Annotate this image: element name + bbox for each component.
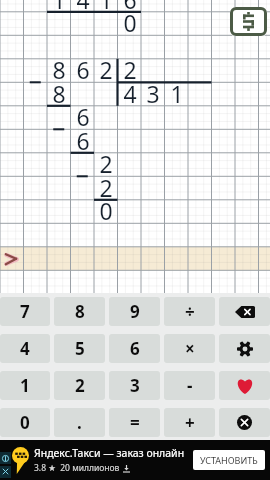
staticText: 1 <box>170 78 184 109</box>
staticText: 2 <box>75 374 85 397</box>
staticText: . <box>77 411 82 434</box>
button[interactable]: 3 <box>109 371 160 400</box>
staticText: - <box>187 374 193 397</box>
staticText: 6 <box>130 337 140 360</box>
staticText: 2 <box>99 172 113 203</box>
button[interactable]: 8 <box>54 297 105 326</box>
staticText: 6 <box>76 125 90 156</box>
button[interactable]: Favorites <box>219 371 270 400</box>
button[interactable]: Clear <box>219 408 270 437</box>
staticText: 1 <box>20 374 30 397</box>
button[interactable]: 4 <box>0 334 50 363</box>
staticText: 6 <box>76 101 90 132</box>
staticText: 6 <box>76 54 90 85</box>
button[interactable]: 7 <box>0 297 50 326</box>
staticText: 0 <box>20 411 30 434</box>
staticText: = <box>130 411 140 434</box>
staticText: 6 <box>123 0 137 15</box>
staticText: 3 <box>146 78 160 109</box>
staticText: 8 <box>52 54 66 85</box>
button[interactable]: ÷ <box>164 297 215 326</box>
staticText: УСТАНОВИТЬ <box>200 454 258 466</box>
button[interactable]: Яндекс.Такси — заказ онлайн <box>0 440 270 480</box>
staticText: 1 <box>52 0 66 15</box>
staticText: 5 <box>75 337 85 360</box>
staticText: 8 <box>52 78 66 109</box>
staticText: + <box>185 411 195 434</box>
button[interactable]: . <box>54 408 105 437</box>
staticText: 9 <box>130 300 140 323</box>
button[interactable]: Backspace <box>219 297 270 326</box>
staticText: 8 <box>75 300 85 323</box>
button[interactable]: 0 <box>0 408 50 437</box>
button[interactable]: + <box>164 408 215 437</box>
staticText: 2 <box>123 54 137 85</box>
staticText: 4 <box>123 78 137 109</box>
button[interactable] <box>0 247 270 271</box>
staticText: 2 <box>99 148 113 179</box>
staticText: 0 <box>123 7 137 38</box>
staticText: 3 <box>130 374 140 397</box>
staticText: 1 <box>99 0 113 15</box>
button[interactable]: УСТАНОВИТЬ <box>193 450 265 470</box>
staticText: 0 <box>99 195 113 226</box>
button[interactable]: 9 <box>109 297 160 326</box>
staticText: 2 <box>99 54 113 85</box>
button[interactable]: = <box>109 408 160 437</box>
button[interactable]: Settings <box>219 334 270 363</box>
staticText: 4 <box>20 337 30 360</box>
staticText: × <box>185 337 195 360</box>
staticText: Яндекс.Такси — заказ онлайн <box>34 446 185 460</box>
staticText: ÷ <box>185 300 195 323</box>
button[interactable]: 2 <box>54 371 105 400</box>
button[interactable]: - <box>164 371 215 400</box>
staticText: 7 <box>20 300 30 323</box>
button[interactable]: × <box>164 334 215 363</box>
staticText: 3.8 ★ 20 миллионов <box>34 462 120 474</box>
staticText: 4 <box>76 0 90 15</box>
button[interactable]: 6 <box>109 334 160 363</box>
button[interactable]: 1 <box>0 371 50 400</box>
button[interactable]: 5 <box>54 334 105 363</box>
button[interactable]: Remove ads <box>230 7 267 36</box>
